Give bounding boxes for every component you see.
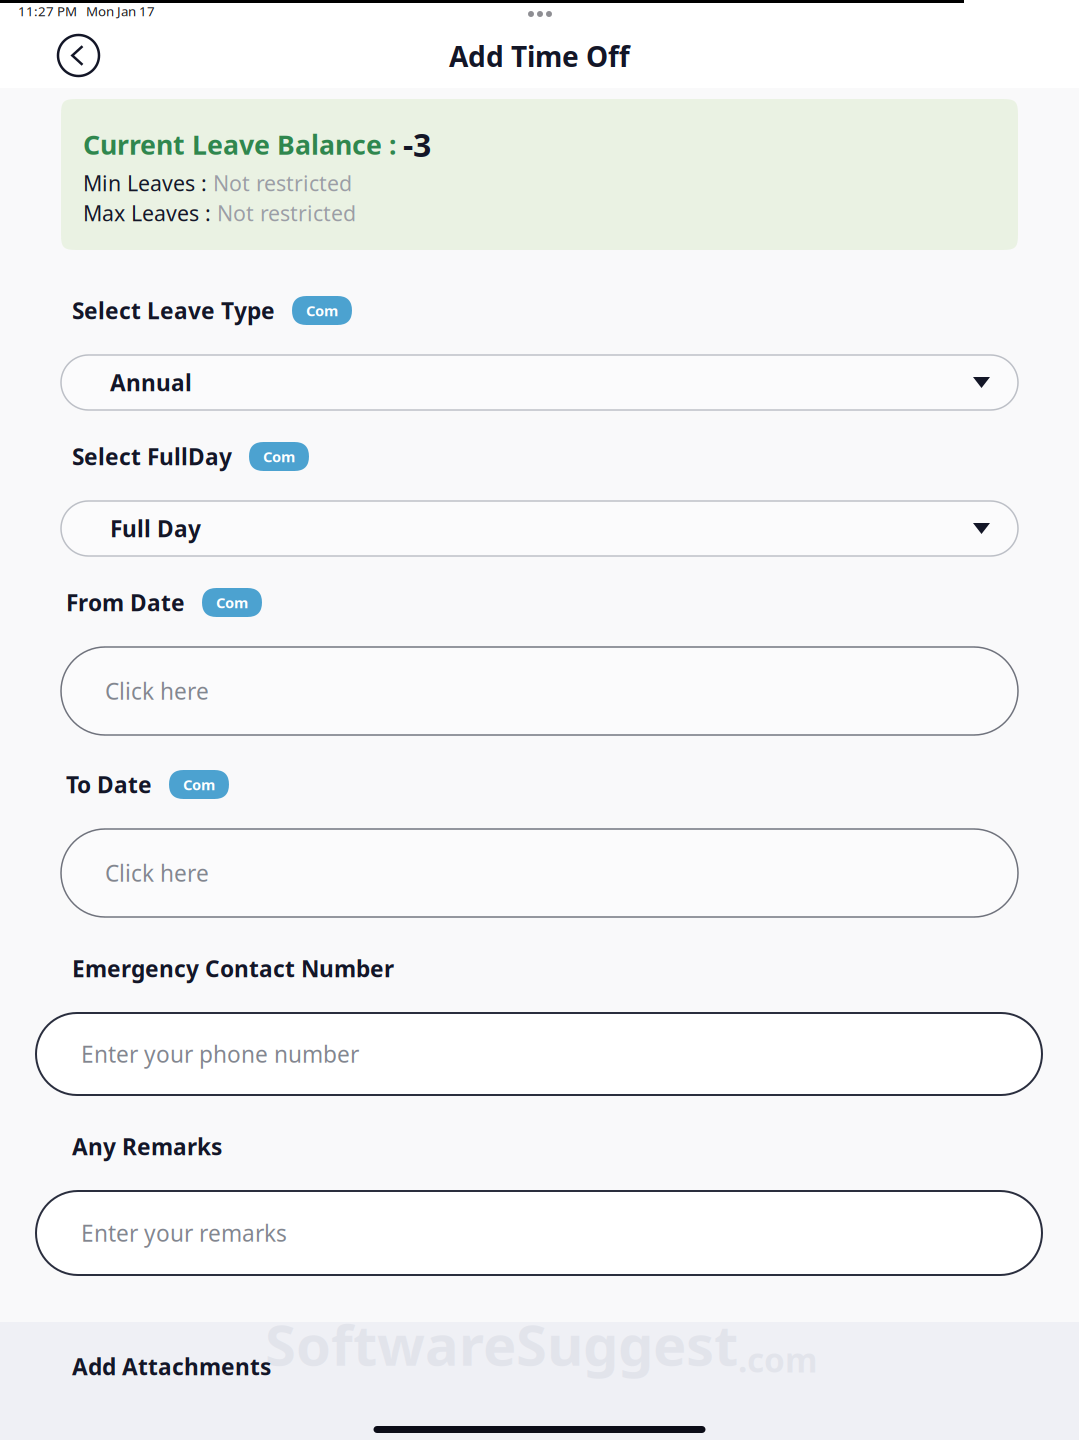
staticText: .com: [738, 1337, 818, 1382]
button[interactable]: Click here: [61, 647, 1018, 735]
button[interactable]: Enter your remarks: [36, 1191, 1042, 1275]
staticText: Not restricted: [217, 198, 356, 228]
staticText: Select Leave Type: [72, 295, 275, 326]
staticText: Min Leaves :: [83, 168, 213, 198]
staticText: 11:27 PM Mon Jan 17: [18, 2, 155, 20]
staticText: Current Leave Balance :: [83, 126, 403, 163]
staticText: Emergency Contact Number: [72, 953, 394, 984]
button[interactable]: Annual: [61, 355, 1018, 410]
staticText: Any Remarks: [72, 1131, 222, 1162]
button[interactable]: Enter your phone number: [36, 1013, 1042, 1095]
button[interactable]: Back: [58, 35, 99, 76]
staticText: Annual: [110, 367, 192, 398]
staticText: Com: [306, 300, 338, 320]
staticText: Com: [183, 774, 215, 794]
staticText: From Date: [66, 587, 185, 618]
staticText: Add Attachments: [72, 1351, 271, 1382]
staticText: Add Time Off: [449, 37, 630, 75]
staticText: Enter your phone number: [81, 1039, 359, 1069]
staticText: Enter your remarks: [81, 1218, 287, 1248]
button[interactable]: Click here: [61, 829, 1018, 917]
staticText: Click here: [105, 858, 209, 888]
staticText: Com: [263, 446, 295, 466]
button[interactable]: Full Day: [61, 501, 1018, 556]
staticText: Select FullDay: [72, 441, 232, 472]
staticText: Com: [216, 592, 248, 612]
staticText: Not restricted: [213, 168, 352, 198]
staticText: SoftwareSuggest: [265, 1306, 738, 1382]
staticText: -3: [403, 123, 431, 166]
staticText: Full Day: [110, 513, 201, 544]
staticText: To Date: [66, 769, 152, 800]
staticText: Click here: [105, 676, 209, 706]
staticText: Max Leaves :: [83, 198, 217, 228]
